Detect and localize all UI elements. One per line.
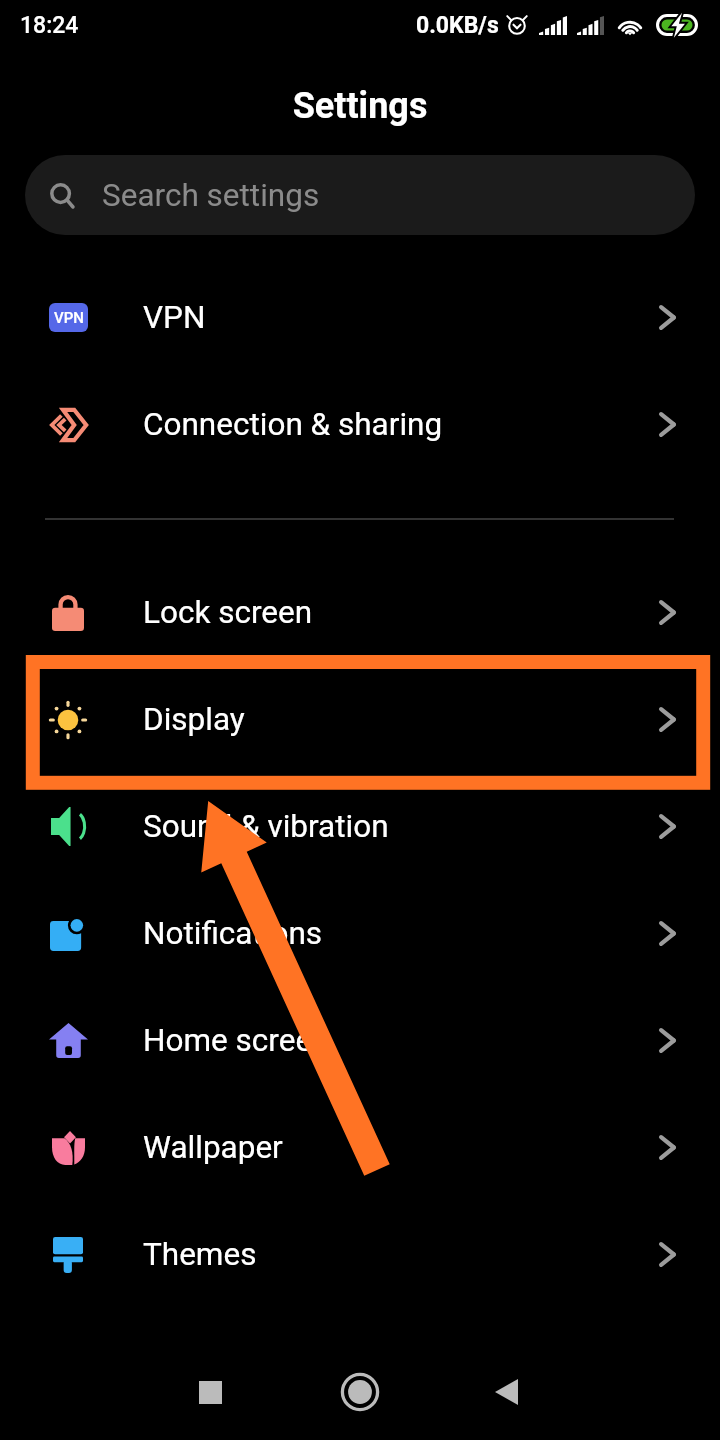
staticText: Search settings	[102, 177, 320, 214]
button[interactable]: Display	[0, 666, 720, 773]
staticText: 18:24	[20, 12, 79, 39]
button[interactable]: Wallpaper	[0, 1094, 720, 1201]
button[interactable]: Connection & sharing	[0, 371, 720, 478]
staticText: Sound & vibration	[143, 808, 389, 845]
staticText: 0.0KB/s	[416, 12, 499, 39]
staticText: Home screen	[143, 1022, 330, 1059]
staticText: Display	[143, 701, 245, 738]
button[interactable]: Lock screen	[0, 559, 720, 666]
button[interactable]: Search settings	[25, 155, 695, 235]
button[interactable]: Recents	[150, 1344, 270, 1440]
button[interactable]: VPN	[0, 264, 720, 371]
button[interactable]: Home	[300, 1344, 420, 1440]
staticText: Themes	[143, 1236, 257, 1273]
staticText: Wallpaper	[143, 1129, 283, 1166]
button[interactable]: Sound & vibration	[0, 773, 720, 880]
button[interactable]: Notifications	[0, 880, 720, 987]
button[interactable]: Themes	[0, 1201, 720, 1308]
staticText: VPN	[54, 309, 84, 327]
staticText: Settings	[0, 85, 720, 127]
button[interactable]: Home screen	[0, 987, 720, 1094]
button[interactable]: Back	[446, 1344, 566, 1440]
staticText: Notifications	[143, 915, 323, 952]
staticText: Connection & sharing	[143, 406, 443, 443]
staticText: VPN	[143, 299, 206, 336]
staticText: Lock screen	[143, 594, 313, 631]
